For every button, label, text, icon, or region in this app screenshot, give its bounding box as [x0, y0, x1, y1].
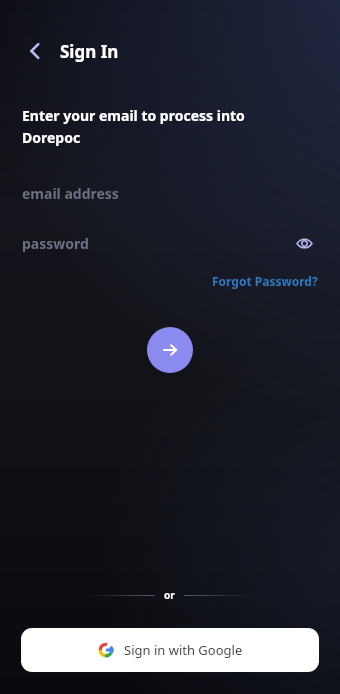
staticText: Sign in with Google [124, 641, 243, 659]
staticText: Enter your email to process into Dorepoc [22, 106, 245, 147]
staticText: password [22, 234, 89, 253]
staticText: email address [22, 184, 119, 203]
staticText: or [164, 588, 175, 602]
staticText: Forgot Password? [212, 273, 318, 289]
button[interactable]: email address [0, 173, 340, 213]
button[interactable]: Sign in with Google [21, 628, 319, 672]
button[interactable]: Continue [147, 327, 193, 373]
button[interactable]: Show password [290, 229, 318, 257]
button[interactable]: Forgot Password? [190, 267, 340, 295]
button[interactable]: Back [18, 34, 52, 68]
staticText: Sign In [60, 40, 119, 63]
button[interactable]: password [0, 223, 340, 263]
